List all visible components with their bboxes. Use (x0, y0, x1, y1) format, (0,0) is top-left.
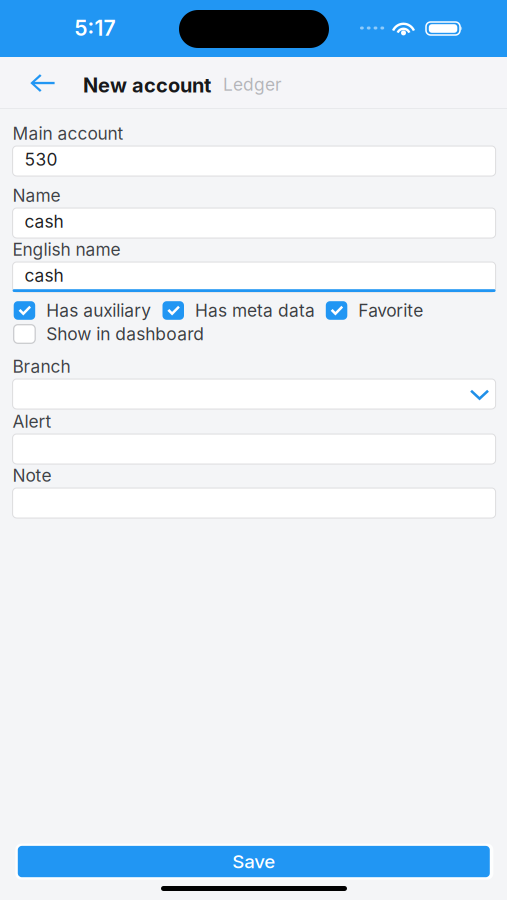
staticText: 530 (25, 149, 58, 170)
staticText: Ledger (223, 74, 282, 95)
staticText: Favorite (358, 300, 423, 321)
button[interactable]: Has meta data (162, 300, 315, 321)
staticText: Show in dashboard (46, 323, 204, 344)
staticText: Has auxiliary (46, 300, 151, 321)
staticText: New account (83, 73, 211, 97)
button[interactable]: Back (0, 57, 55, 109)
staticText: Branch (13, 356, 71, 377)
button[interactable]: Has auxiliary (14, 300, 151, 321)
staticText: 5:17 (74, 15, 115, 41)
staticText: English name (13, 239, 121, 260)
staticText: cash (25, 265, 64, 286)
staticText: cash (25, 211, 64, 232)
button[interactable] (13, 379, 496, 409)
button[interactable]: Show in dashboard (14, 323, 204, 344)
button[interactable]: Favorite (326, 300, 423, 321)
button[interactable]: Save (18, 846, 490, 877)
staticText: Main account (13, 123, 124, 144)
staticText: Alert (13, 411, 52, 432)
staticText: Has meta data (195, 300, 315, 321)
staticText: Save (232, 850, 275, 873)
staticText: Name (13, 185, 61, 206)
staticText: Note (13, 465, 52, 486)
